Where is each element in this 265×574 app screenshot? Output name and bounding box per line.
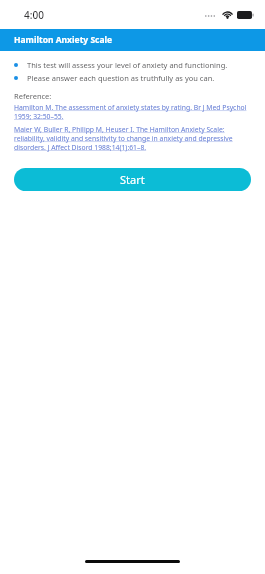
staticText: Start — [120, 172, 145, 187]
button[interactable]: Hamilton M. The assessment of anxiety st… — [0, 103, 265, 121]
staticText: Hamilton Anxiety Scale — [14, 34, 113, 46]
staticText: This test will assess your level of anxi… — [27, 60, 228, 70]
staticText: 4:00 — [24, 8, 44, 22]
button[interactable]: Maier W, Buller R, Philipp M, Heuser I. … — [0, 125, 265, 152]
button[interactable]: Start — [14, 168, 251, 191]
staticText: Please answer each question as truthfull… — [27, 73, 215, 83]
staticText: Reference: — [14, 91, 52, 101]
